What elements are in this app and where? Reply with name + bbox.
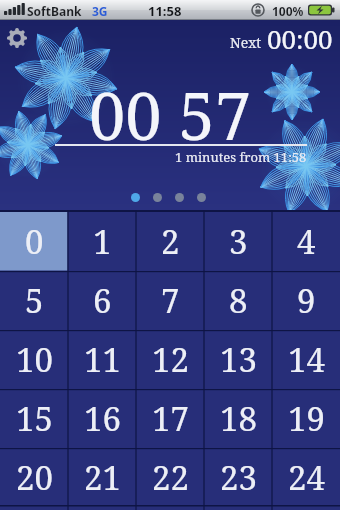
staticText: 3G <box>92 3 108 19</box>
button[interactable]: 21 <box>68 448 136 507</box>
button[interactable]: 7 <box>136 271 204 330</box>
button[interactable]: 6 <box>68 271 136 330</box>
staticText: SoftBank <box>27 3 82 19</box>
button[interactable]: 0 <box>0 212 68 271</box>
button[interactable]: 2 <box>136 212 204 271</box>
button[interactable]: 5 <box>0 271 68 330</box>
staticText: 3 <box>229 219 248 264</box>
staticText: 20 <box>16 455 53 500</box>
staticText: 0 <box>25 219 44 264</box>
button[interactable]: 12 <box>136 330 204 389</box>
staticText: 13 <box>220 337 257 382</box>
staticText: 15 <box>16 396 53 441</box>
staticText: 1 <box>93 219 112 264</box>
staticText: 21 <box>84 455 121 500</box>
button[interactable]: 17 <box>136 389 204 448</box>
button[interactable]: 23 <box>204 448 272 507</box>
staticText: 18 <box>220 396 257 441</box>
staticText: 10 <box>16 337 53 382</box>
staticText: 1 minutes from 11:58 <box>175 148 307 166</box>
staticText: Next <box>230 33 262 52</box>
staticText: 23 <box>220 455 257 500</box>
staticText: 24 <box>288 455 325 500</box>
staticText: 4 <box>297 219 316 264</box>
button[interactable]: 16 <box>68 389 136 448</box>
staticText: 00:00 <box>267 21 333 56</box>
staticText: 9 <box>297 278 316 323</box>
staticText: 14 <box>288 337 325 382</box>
staticText: 2 <box>161 219 180 264</box>
button[interactable]: 10 <box>0 330 68 389</box>
button[interactable]: 14 <box>272 330 340 389</box>
staticText: 12 <box>152 337 189 382</box>
button[interactable]: 18 <box>204 389 272 448</box>
staticText: 11 <box>84 337 121 382</box>
staticText: 17 <box>152 396 189 441</box>
staticText: 7 <box>161 278 180 323</box>
staticText: 19 <box>288 396 325 441</box>
button[interactable]: 9 <box>272 271 340 330</box>
button[interactable]: 22 <box>136 448 204 507</box>
staticText: 16 <box>84 396 121 441</box>
button[interactable]: Next <box>230 21 333 56</box>
staticText: 22 <box>152 455 189 500</box>
button[interactable]: 20 <box>0 448 68 507</box>
button[interactable]: 3 <box>204 212 272 271</box>
staticText: 100% <box>272 3 304 19</box>
staticText: 00 57 <box>89 71 252 160</box>
button[interactable]: 11 <box>68 330 136 389</box>
staticText: 6 <box>93 278 112 323</box>
button[interactable]: 8 <box>204 271 272 330</box>
button[interactable]: 4 <box>272 212 340 271</box>
button[interactable] <box>4 25 30 51</box>
staticText: 5 <box>25 278 44 323</box>
staticText: 8 <box>229 278 248 323</box>
button[interactable]: 15 <box>0 389 68 448</box>
staticText: 11:58 <box>148 2 182 20</box>
button[interactable]: 13 <box>204 330 272 389</box>
button[interactable]: 1 <box>68 212 136 271</box>
button[interactable]: 24 <box>272 448 340 507</box>
button[interactable]: 19 <box>272 389 340 448</box>
